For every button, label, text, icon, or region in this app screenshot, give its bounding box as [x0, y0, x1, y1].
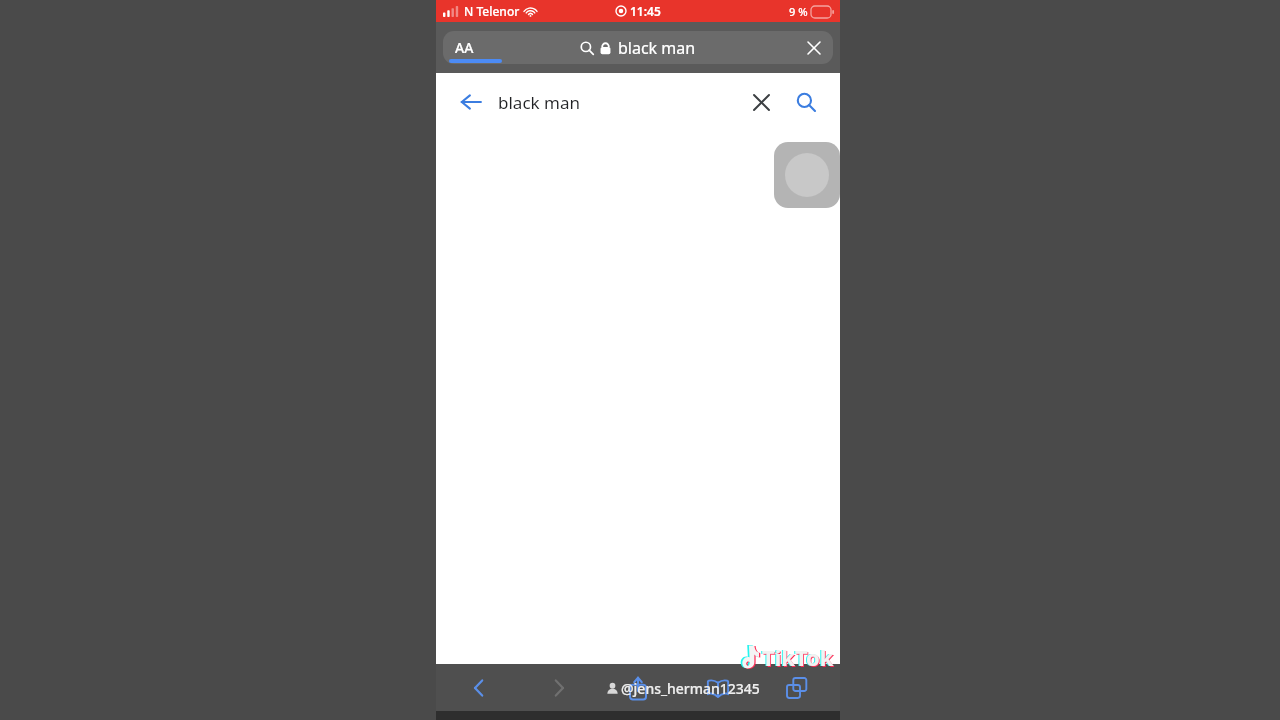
button[interactable]: Back [454, 85, 488, 119]
staticText: 11:45 [630, 3, 661, 19]
staticText: N Telenor [464, 3, 520, 19]
button[interactable]: Tabs [778, 669, 816, 707]
staticText: AA [455, 38, 474, 57]
staticText: @jens_herman12345 [621, 679, 760, 698]
button[interactable]: Bookmarks [699, 669, 737, 707]
staticText: black man [498, 91, 580, 114]
button[interactable]: Share [619, 669, 657, 707]
button[interactable]: Search [788, 84, 824, 120]
button[interactable]: AA [443, 31, 833, 64]
button[interactable]: Clear [803, 37, 825, 59]
staticText: TikTok [761, 642, 833, 672]
staticText: TikTok [763, 643, 835, 673]
staticText: 9 % [789, 4, 808, 19]
staticText: TikTok [762, 642, 834, 672]
button[interactable]: Back [460, 669, 498, 707]
button[interactable]: Forward [540, 669, 578, 707]
staticText: black man [618, 37, 696, 59]
button[interactable]: Clear search [744, 85, 778, 119]
